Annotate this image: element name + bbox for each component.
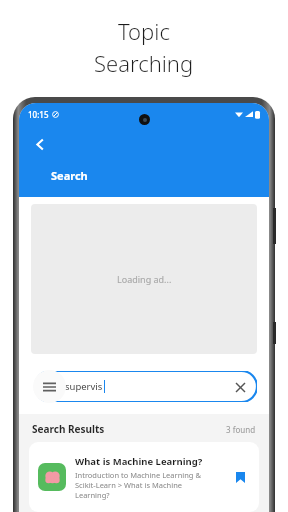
staticText: Learning? <box>75 490 110 500</box>
button[interactable]: Back <box>25 129 55 159</box>
button[interactable]: supervis <box>35 371 257 402</box>
staticText: 10:15 <box>28 109 49 120</box>
staticText: Introduction to Machine Learning & <box>75 470 201 480</box>
button[interactable]: Clear <box>231 378 249 396</box>
staticText: Search <box>51 168 88 183</box>
staticText: What is Machine Learning? <box>75 455 203 468</box>
staticText: Search Results <box>32 422 105 436</box>
staticText: Scikit-Learn > What is Machine <box>75 480 183 490</box>
staticText: 3 found <box>226 424 256 435</box>
button[interactable]: Bookmark <box>230 467 250 487</box>
staticText: Loading ad... <box>117 273 172 285</box>
staticText: Topic <box>118 16 170 46</box>
staticText: Searching <box>94 48 194 78</box>
button[interactable]: What is Machine Learning? <box>29 442 259 512</box>
button[interactable]: Menu <box>33 370 66 403</box>
staticText: supervis <box>65 380 103 393</box>
